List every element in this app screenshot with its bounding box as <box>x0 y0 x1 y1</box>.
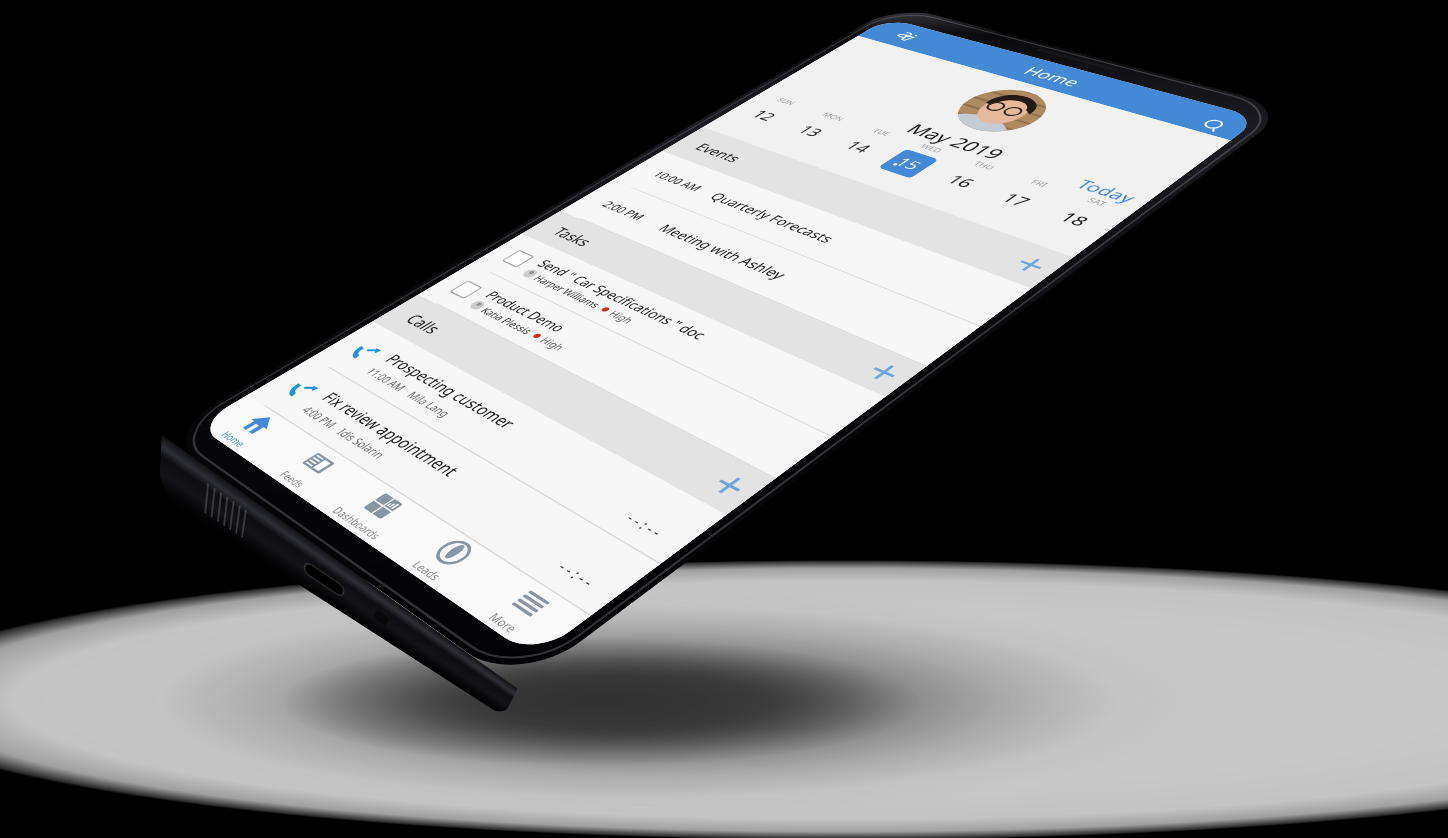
staticText: Fix review appointment <box>60 626 203 644</box>
button[interactable]: Prospecting customer <box>11 564 371 616</box>
staticText: Mila Lang <box>108 594 150 606</box>
button[interactable]: 10:00 AM <box>11 286 371 338</box>
staticText: - - : - - <box>325 591 351 605</box>
button[interactable]: Add Tasks <box>335 391 371 427</box>
staticText: 4:00 PM <box>60 646 94 658</box>
button[interactable]: Send " Car Specifications " doc <box>11 428 371 476</box>
button[interactable]: Product Demo <box>11 476 371 524</box>
button[interactable]: Fix review appointment <box>11 616 371 668</box>
staticText: High <box>151 454 172 466</box>
staticText: Send " Car Specifications " doc <box>56 437 227 453</box>
button[interactable]: Leads <box>227 668 299 708</box>
button[interactable]: 2:00 PM <box>11 338 371 390</box>
button[interactable]: Add Calls <box>335 526 371 562</box>
button[interactable]: Dashboards <box>155 668 227 708</box>
button[interactable]: More <box>299 668 371 708</box>
staticText: - - : - - <box>325 643 351 657</box>
staticText: More <box>325 695 345 706</box>
